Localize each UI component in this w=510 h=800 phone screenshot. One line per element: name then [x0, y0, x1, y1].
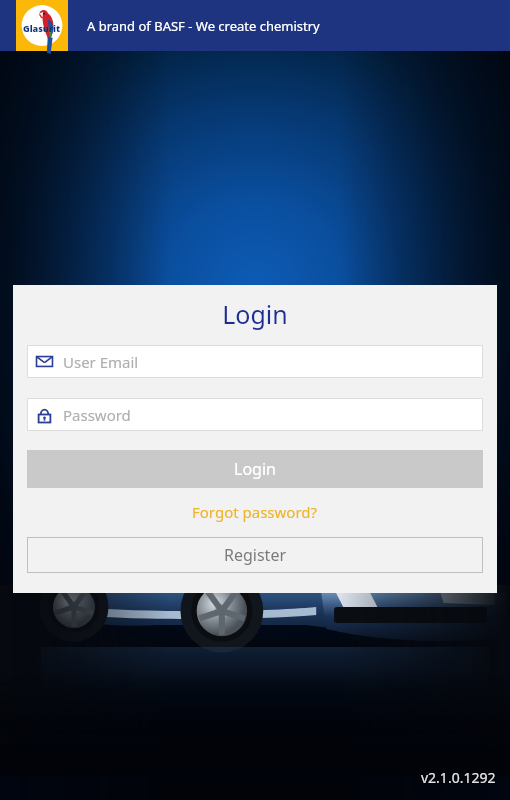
button[interactable]: Password [27, 398, 483, 431]
staticText: Forgot password? [192, 502, 318, 522]
staticText: Password [63, 405, 131, 425]
button[interactable]: User Email [27, 345, 483, 378]
staticText: Glasurit [23, 22, 61, 34]
button[interactable]: Glasurit logo [16, 0, 68, 51]
button[interactable]: Login [27, 450, 483, 488]
staticText: Register [224, 544, 287, 566]
staticText: v2.1.0.1292 [421, 768, 496, 787]
staticText: User Email [63, 352, 139, 372]
staticText: Login [234, 458, 276, 480]
button[interactable]: Forgot password? [13, 499, 497, 525]
staticText: A brand of BASF - We create chemistry [87, 17, 320, 35]
staticText: Login [13, 297, 497, 331]
button[interactable]: Register [27, 537, 483, 573]
